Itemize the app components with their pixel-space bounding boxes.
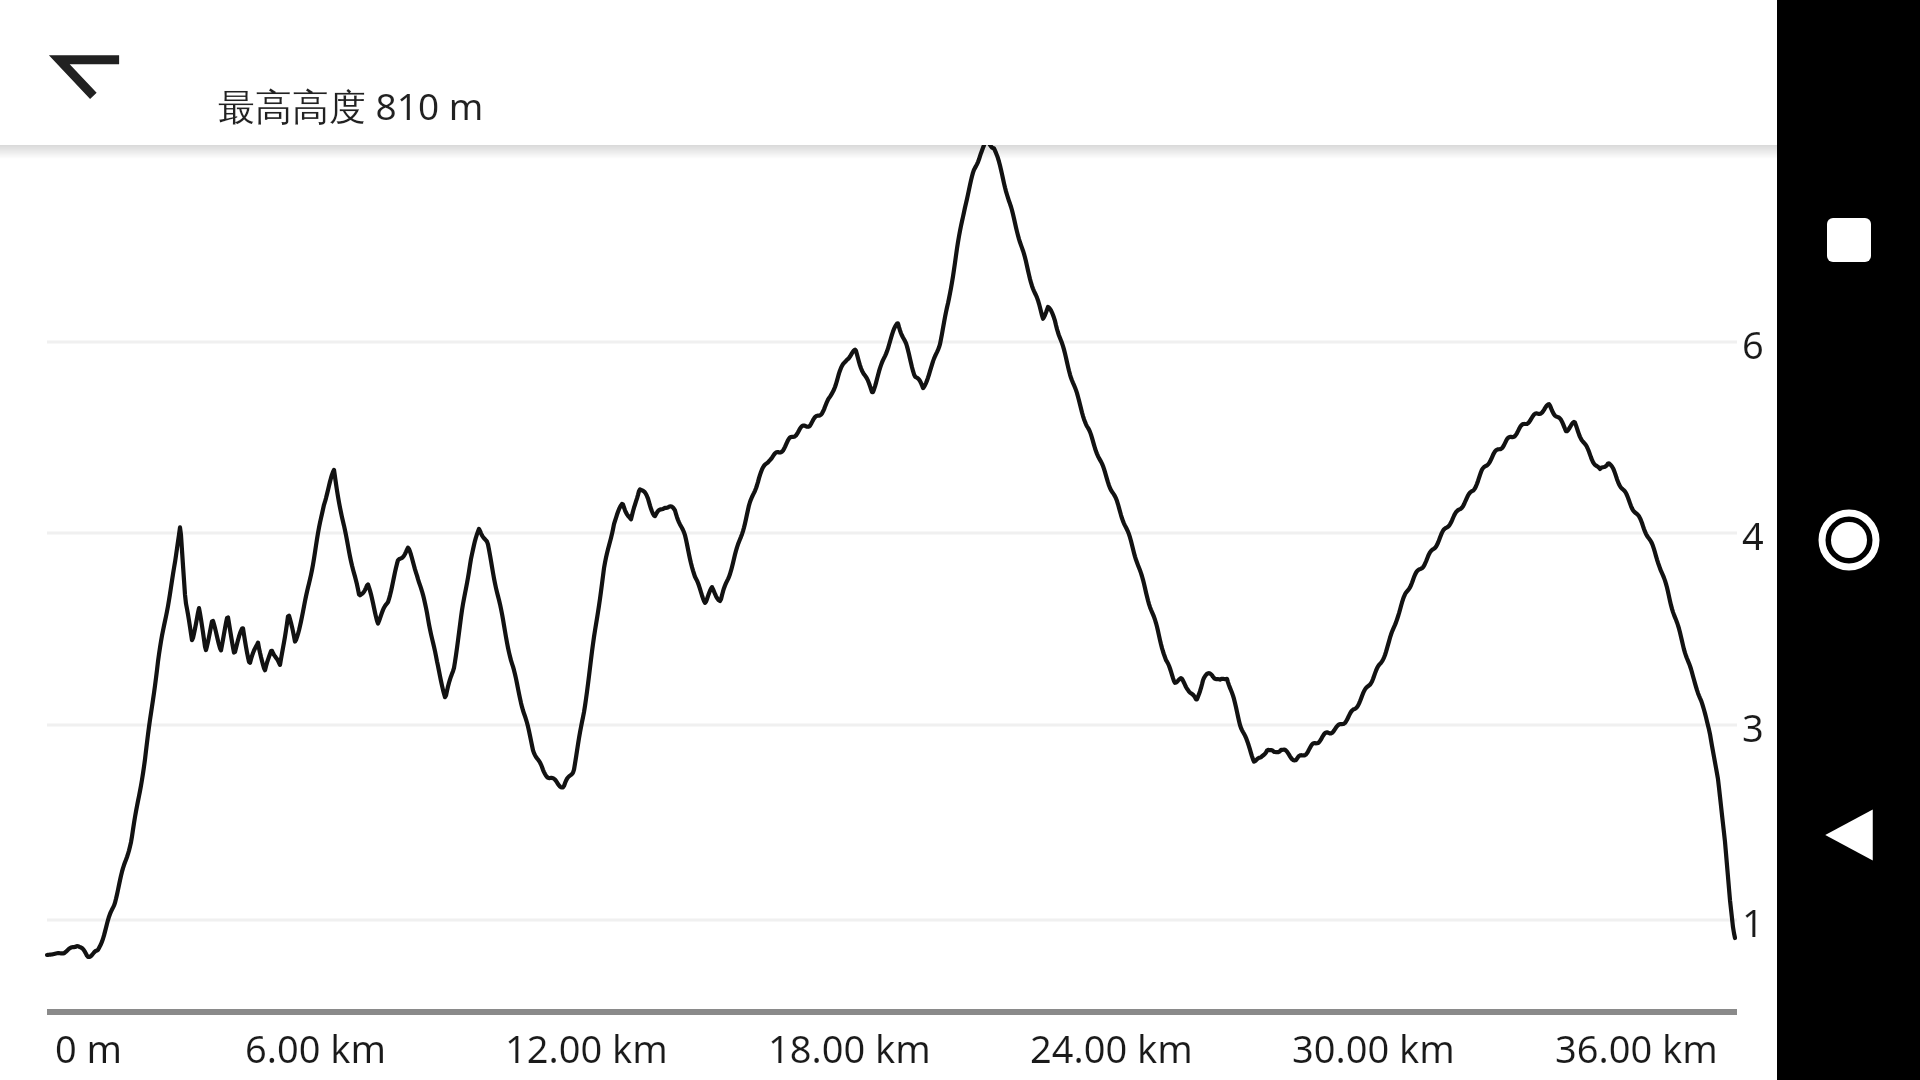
staticText: 3	[1742, 701, 1764, 749]
staticText: 30.00 km	[1292, 1022, 1455, 1074]
staticText: 6	[1742, 318, 1764, 366]
staticText: 最高高度 810 m	[218, 80, 484, 131]
button[interactable]: Home	[1799, 490, 1899, 590]
staticText: 0 m	[55, 1022, 123, 1074]
button[interactable]: Back	[40, 22, 132, 108]
staticText: 24.00 km	[1030, 1022, 1193, 1074]
staticText: 16	[1742, 896, 1777, 944]
staticText: 36.00 km	[1555, 1022, 1718, 1074]
button[interactable]: Back	[1799, 785, 1899, 885]
staticText: 12.00 km	[505, 1022, 668, 1074]
button[interactable]: Recent apps	[1799, 190, 1899, 290]
staticText: 6.00 km	[245, 1022, 387, 1074]
staticText: 4	[1742, 509, 1764, 557]
staticText: 18.00 km	[768, 1022, 931, 1074]
